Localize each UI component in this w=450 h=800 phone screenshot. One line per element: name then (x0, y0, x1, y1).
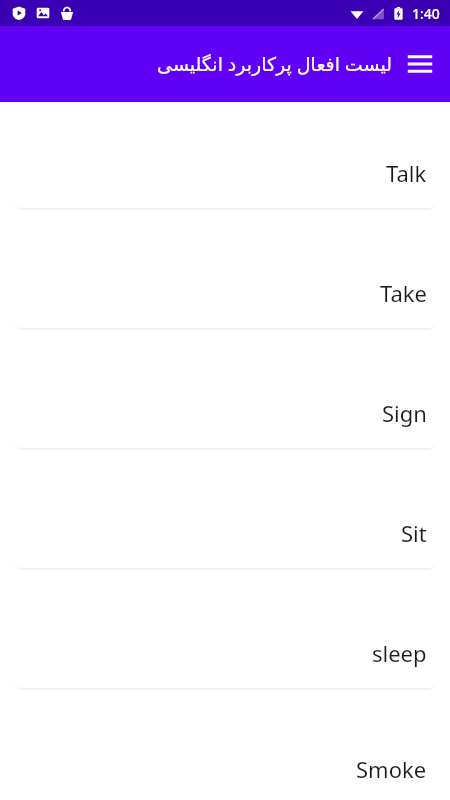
button[interactable]: Sit (8, 497, 442, 568)
staticText: sleep (372, 638, 427, 668)
staticText: Talk (386, 158, 427, 188)
button[interactable]: Smoke (8, 737, 442, 800)
staticText: Sit (401, 518, 427, 548)
button[interactable]: Talk (8, 137, 442, 208)
button[interactable]: Take (8, 257, 442, 328)
staticText: Take (380, 278, 427, 308)
staticText: لیست افعال پرکاربرد انگلیسی (157, 51, 392, 77)
button[interactable]: Open navigation menu (398, 42, 442, 86)
staticText: Sign (382, 398, 427, 428)
staticText: 1:40 (412, 4, 440, 23)
button[interactable]: Sign (8, 377, 442, 448)
button[interactable]: sleep (8, 617, 442, 688)
staticText: Smoke (356, 754, 427, 784)
